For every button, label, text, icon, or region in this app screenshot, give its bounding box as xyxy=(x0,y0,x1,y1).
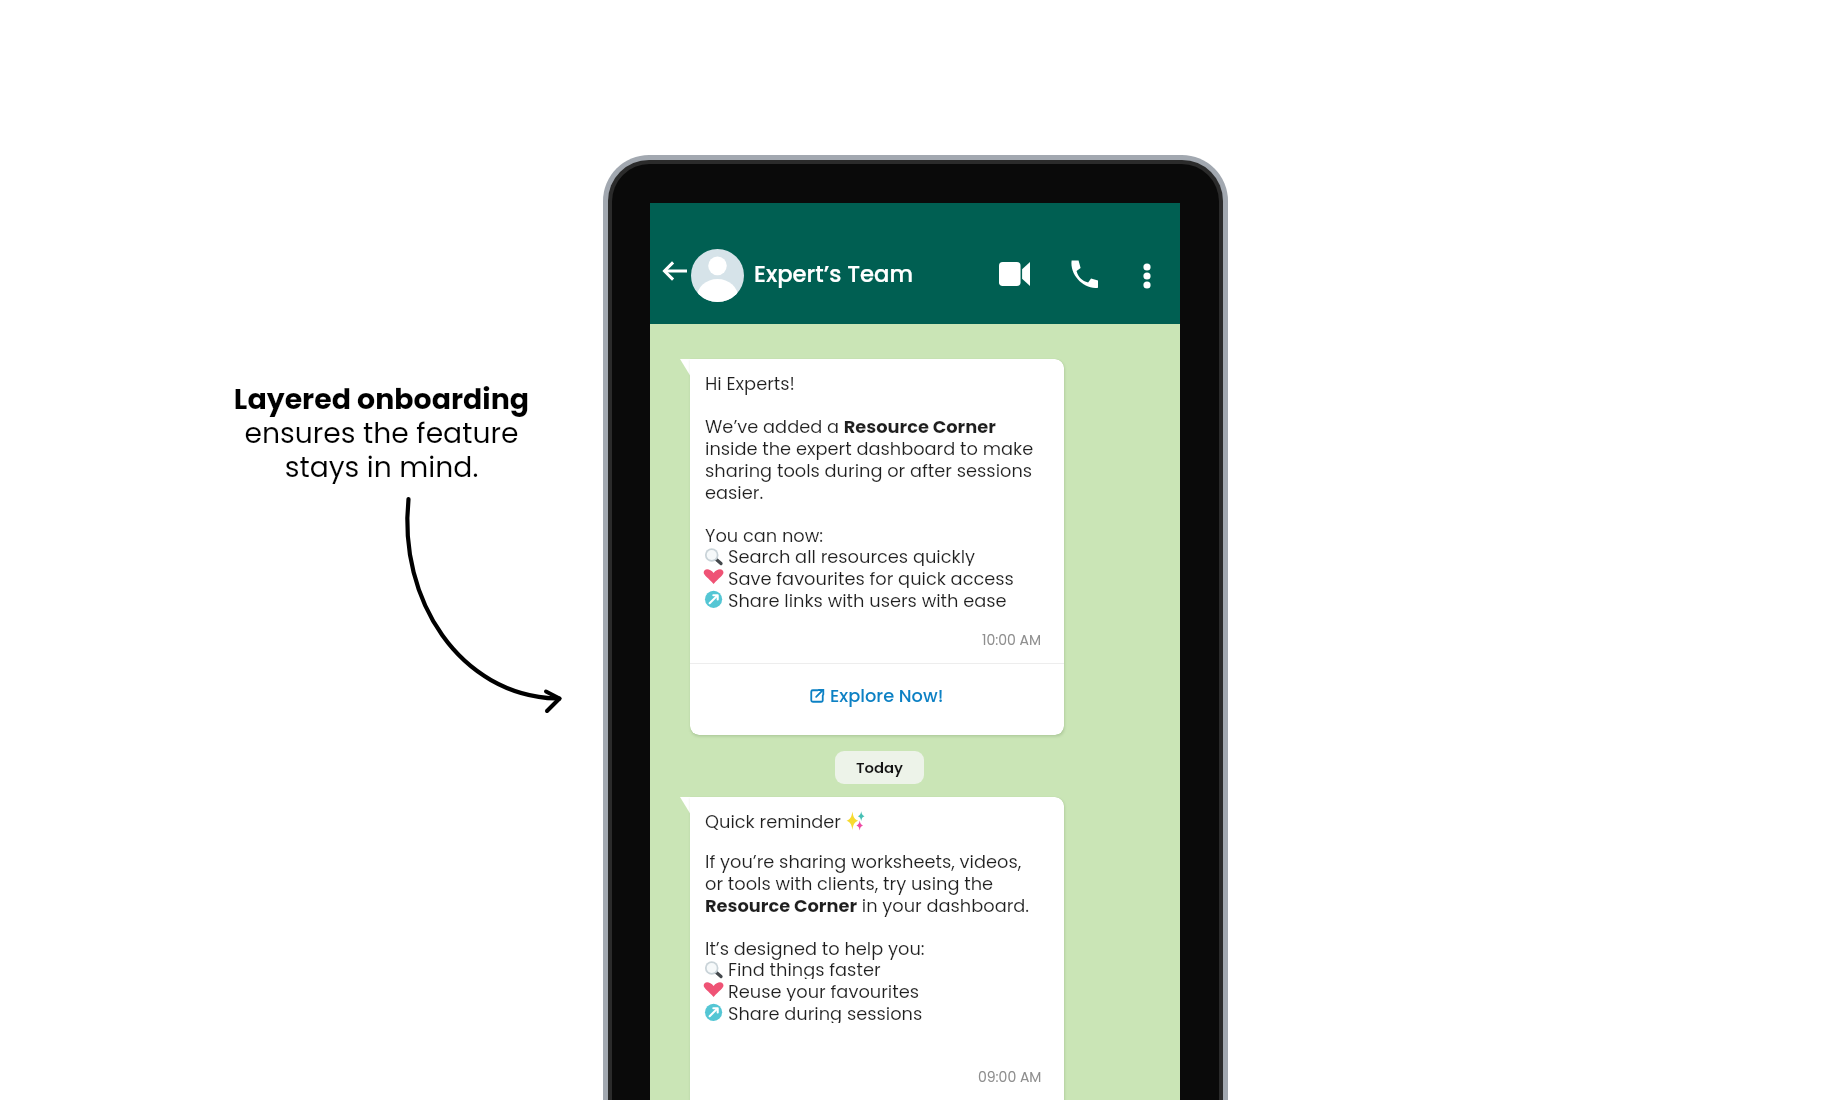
staticText: Expert’s Team xyxy=(754,258,913,290)
staticText: Share during sessions xyxy=(728,1001,923,1023)
button[interactable]: Hi Experts! xyxy=(690,359,1064,735)
button[interactable]: Today xyxy=(856,757,903,778)
staticText: It’s designed to help you: xyxy=(705,936,925,961)
staticText: You can now: xyxy=(705,523,824,548)
staticText: Reuse your favourites xyxy=(728,979,919,1001)
staticText: 10:00 AM xyxy=(982,630,1042,650)
staticText: If you’re sharing worksheets, videos, or… xyxy=(705,849,1042,918)
button[interactable]: Explore Now! xyxy=(690,664,1064,735)
staticText: Quick reminder xyxy=(705,809,841,831)
button[interactable]: Expert’s Team xyxy=(754,256,934,292)
button[interactable]: Video call xyxy=(977,236,1052,311)
staticText: We’ve added a Resource Corner inside the… xyxy=(705,414,1042,505)
staticText: Layered onboarding ensures the feature s… xyxy=(232,379,531,487)
staticText: Save favourites for quick access xyxy=(728,566,1014,588)
staticText: Explore Now! xyxy=(830,683,944,708)
staticText: Share links with users with ease xyxy=(728,588,1007,610)
button[interactable]: Back xyxy=(647,243,703,299)
staticText: Find things faster xyxy=(728,957,881,979)
staticText: 09:00 AM xyxy=(978,1067,1042,1087)
button[interactable]: More options xyxy=(1119,248,1175,304)
staticText: Today xyxy=(856,757,903,778)
staticText: Hi Experts! xyxy=(705,371,795,396)
button[interactable]: Call xyxy=(1046,237,1121,312)
button[interactable]: Quick reminder xyxy=(690,797,1064,1100)
staticText: Search all resources quickly xyxy=(728,544,976,566)
